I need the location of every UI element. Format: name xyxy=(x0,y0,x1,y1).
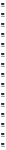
button[interactable]: Bluetooth, On xyxy=(0,20,6,30)
button[interactable]: Notifications, Allowed xyxy=(0,50,6,60)
button[interactable]: Screen Time, 4h 12m xyxy=(0,80,6,90)
button[interactable]: Cellular, Enabled xyxy=(0,30,6,40)
button[interactable]: Sounds & Haptics, Custom xyxy=(0,60,6,70)
button[interactable]: Personal Hotspot, Off xyxy=(0,40,6,50)
button[interactable]: Focus, Do Not Disturb xyxy=(0,70,6,80)
button[interactable]: Airplane Mode, Off xyxy=(0,0,6,10)
button[interactable]: Wallpaper, Dynamic xyxy=(0,140,6,150)
button[interactable]: Wi-Fi, HomeNetwork xyxy=(0,10,6,20)
button[interactable]: Home Screen, Default xyxy=(0,120,6,130)
button[interactable]: Accessibility, On xyxy=(0,130,6,140)
button[interactable]: General, About xyxy=(0,90,6,100)
button[interactable]: Display & Brightness, Light xyxy=(0,110,6,120)
button[interactable]: Control Center, Customize xyxy=(0,100,6,110)
